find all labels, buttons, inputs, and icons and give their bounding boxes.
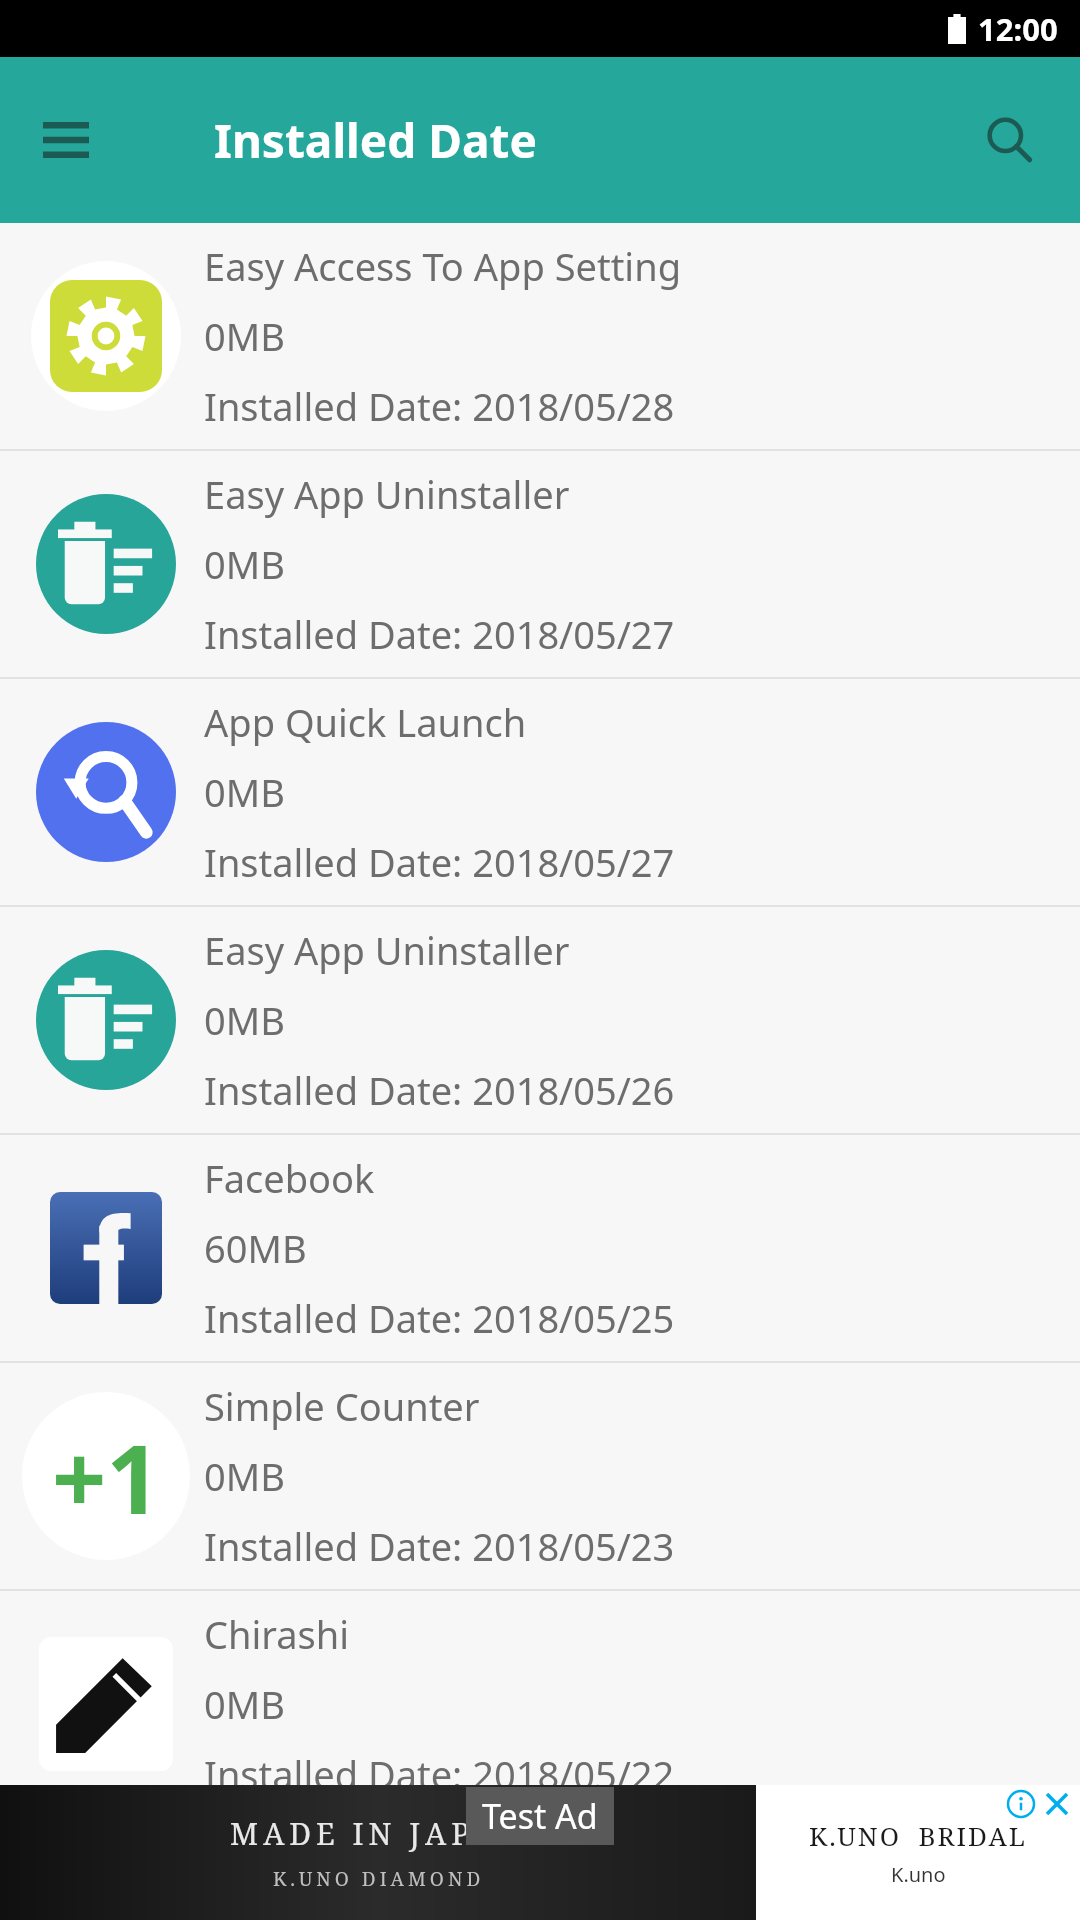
button[interactable]: Chirashi [0,1591,1080,1817]
button[interactable]: Close ad [1044,1791,1070,1817]
staticText: 0MB [204,1450,285,1502]
staticText: K.UNO BRIDAL [809,1818,1027,1853]
staticText: Easy Access To App Setting [204,240,682,292]
staticText: K.uno [891,1861,946,1888]
button[interactable]: Easy Access To App Setting [0,223,1080,449]
staticText: Installed Date: 2018/05/27 [204,836,675,888]
staticText: K.UNO DIAMOND [273,1866,485,1892]
staticText: +1 [52,1412,161,1541]
staticText: Installed Date: 2018/05/25 [204,1292,675,1344]
staticText: 12:00 [978,8,1058,50]
button[interactable]: App Quick Launch [0,679,1080,905]
button[interactable]: Open navigation menu [34,108,98,172]
button[interactable]: Easy App Uninstaller [0,907,1080,1133]
staticText: Installed Date: 2018/05/28 [204,380,675,432]
staticText: Easy App Uninstaller [204,924,570,976]
button[interactable]: +1 [0,1363,1080,1589]
button[interactable]: Easy App Uninstaller [0,451,1080,677]
staticText: Installed Date [214,109,537,172]
staticText: Installed Date: 2018/05/22 [204,1748,675,1800]
staticText: Facebook [204,1152,375,1204]
staticText: Simple Counter [204,1380,480,1432]
staticText: 0MB [204,310,285,362]
staticText: Test Ad [482,1793,598,1839]
staticText: 0MB [204,1678,285,1730]
staticText: 0MB [204,538,285,590]
staticText: Installed Date: 2018/05/27 [204,608,675,660]
staticText: App Quick Launch [204,696,527,748]
staticText: Installed Date: 2018/05/26 [204,1064,675,1116]
staticText: 0MB [204,766,285,818]
staticText: 0MB [204,994,285,1046]
button[interactable]: MADE IN JAPAN [0,1785,1080,1920]
staticText: Easy App Uninstaller [204,468,570,520]
staticText: MADE IN JAPAN [230,1813,527,1854]
staticText: 60MB [204,1222,307,1274]
button[interactable]: Search [974,105,1044,175]
button[interactable]: Ad information [1008,1791,1034,1817]
button[interactable]: Facebook [0,1135,1080,1361]
staticText: Installed Date: 2018/05/23 [204,1520,675,1572]
staticText: Chirashi [204,1608,350,1660]
